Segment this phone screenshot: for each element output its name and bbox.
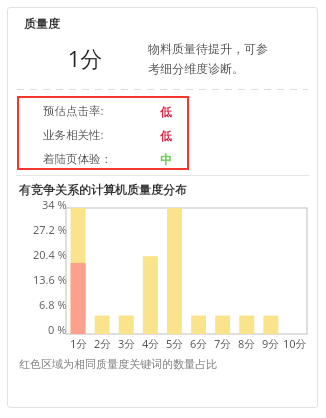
staticText: 红色区域为相同质量度关键词的数量占比 [19, 357, 217, 371]
staticText: 低 [143, 104, 189, 119]
staticText: 9分 [262, 336, 280, 351]
staticText: 中 [143, 152, 189, 167]
staticText: 3分 [118, 336, 136, 351]
staticText: 13.6 % [33, 272, 67, 287]
staticText: 6分 [190, 336, 208, 351]
staticText: 着陆页体验： [43, 152, 112, 166]
staticText: 2分 [94, 336, 112, 351]
staticText: 20.4 % [33, 247, 67, 262]
staticText: 有竞争关系的计算机质量度分布 [19, 182, 187, 197]
staticText: 预估点击率: [43, 103, 104, 119]
staticText: 质量度 [24, 16, 60, 31]
staticText: 10分 [283, 336, 307, 351]
staticText: 0 % [48, 322, 67, 337]
staticText: 考细分维度诊断。 [148, 61, 244, 76]
staticText: 1分 [55, 43, 115, 73]
staticText: 6.8 % [39, 297, 67, 312]
button[interactable]: 着陆页体验： [17, 150, 189, 168]
staticText: 1分 [70, 336, 88, 351]
staticText: 低 [143, 128, 189, 143]
staticText: 7分 [214, 336, 232, 351]
staticText: 物料质量待提升，可参 [148, 41, 268, 56]
staticText: 5分 [166, 336, 184, 351]
button[interactable]: 预估点击率: [17, 102, 189, 120]
staticText: 4分 [142, 336, 160, 351]
staticText: 34 % [42, 197, 67, 212]
button[interactable]: 业务相关性: [17, 126, 189, 144]
button[interactable]: 预估点击率: [17, 96, 189, 170]
staticText: 27.2 % [33, 222, 67, 237]
staticText: 业务相关性: [43, 127, 104, 143]
staticText: 8分 [238, 336, 256, 351]
